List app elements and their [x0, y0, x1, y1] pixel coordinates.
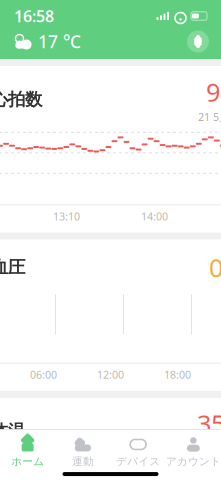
staticText: デバイス: [116, 455, 160, 468]
staticText: アカウント: [166, 455, 221, 468]
button[interactable]: 運動: [55, 430, 110, 472]
staticText: 運動: [72, 455, 94, 468]
staticText: 21 5月 15:20: [198, 110, 221, 124]
staticText: 18:00: [164, 368, 191, 382]
button[interactable]: アカウント: [166, 430, 221, 472]
staticText: 14:00: [141, 209, 168, 223]
staticText: 16:58: [14, 5, 54, 27]
staticText: 血圧: [0, 257, 25, 278]
staticText: 35.5: [197, 407, 221, 440]
button[interactable]: デバイス: [187, 30, 209, 52]
button[interactable]: ホーム: [0, 430, 55, 472]
staticText: 13:10: [53, 209, 80, 223]
staticText: 92: [206, 75, 221, 109]
staticText: 体温: [0, 421, 25, 442]
staticText: 17 °C: [38, 30, 81, 53]
staticText: 06:00: [30, 368, 57, 382]
staticText: 心拍数: [0, 89, 42, 110]
staticText: 21 5月 15:00: [198, 441, 221, 456]
staticText: 0: [209, 250, 221, 284]
staticText: 12:00: [97, 368, 124, 382]
staticText: ホーム: [11, 455, 44, 468]
button[interactable]: デバイス: [110, 430, 166, 472]
